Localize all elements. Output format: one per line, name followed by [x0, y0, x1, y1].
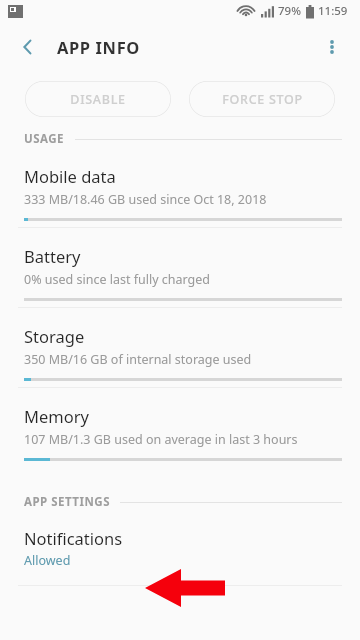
button[interactable]: Mobile data — [0, 148, 360, 227]
staticText: APP INFO — [57, 36, 140, 58]
staticText: Storage — [24, 325, 85, 347]
staticText: Battery — [24, 245, 81, 267]
button[interactable]: Back — [10, 29, 46, 65]
button[interactable]: Notifications — [0, 511, 360, 585]
staticText: 79% — [278, 3, 301, 19]
staticText: 11:59 — [318, 3, 348, 19]
staticText: FORCE STOP — [222, 91, 303, 108]
staticText: Notifications — [24, 527, 123, 549]
staticText: Mobile data — [24, 165, 116, 187]
staticText: 0% used since last fully charged — [24, 271, 211, 288]
staticText: 333 MB/18.46 GB used since Oct 18, 2018 — [24, 191, 267, 208]
button[interactable]: FORCE STOP — [189, 81, 335, 117]
staticText: APP SETTINGS — [24, 494, 110, 510]
button[interactable]: DISABLE — [25, 81, 171, 117]
staticText: Allowed — [24, 552, 71, 569]
button[interactable]: More options — [312, 27, 352, 67]
staticText: Memory — [24, 405, 89, 427]
staticText: 107 MB/1.3 GB used on average in last 3 … — [24, 431, 298, 448]
button[interactable]: Memory — [0, 388, 360, 467]
button[interactable]: Battery — [0, 228, 360, 307]
staticText: USAGE — [24, 131, 65, 147]
button[interactable]: Storage — [0, 308, 360, 387]
staticText: 350 MB/16 GB of internal storage used — [24, 351, 252, 368]
staticText: DISABLE — [70, 91, 126, 108]
